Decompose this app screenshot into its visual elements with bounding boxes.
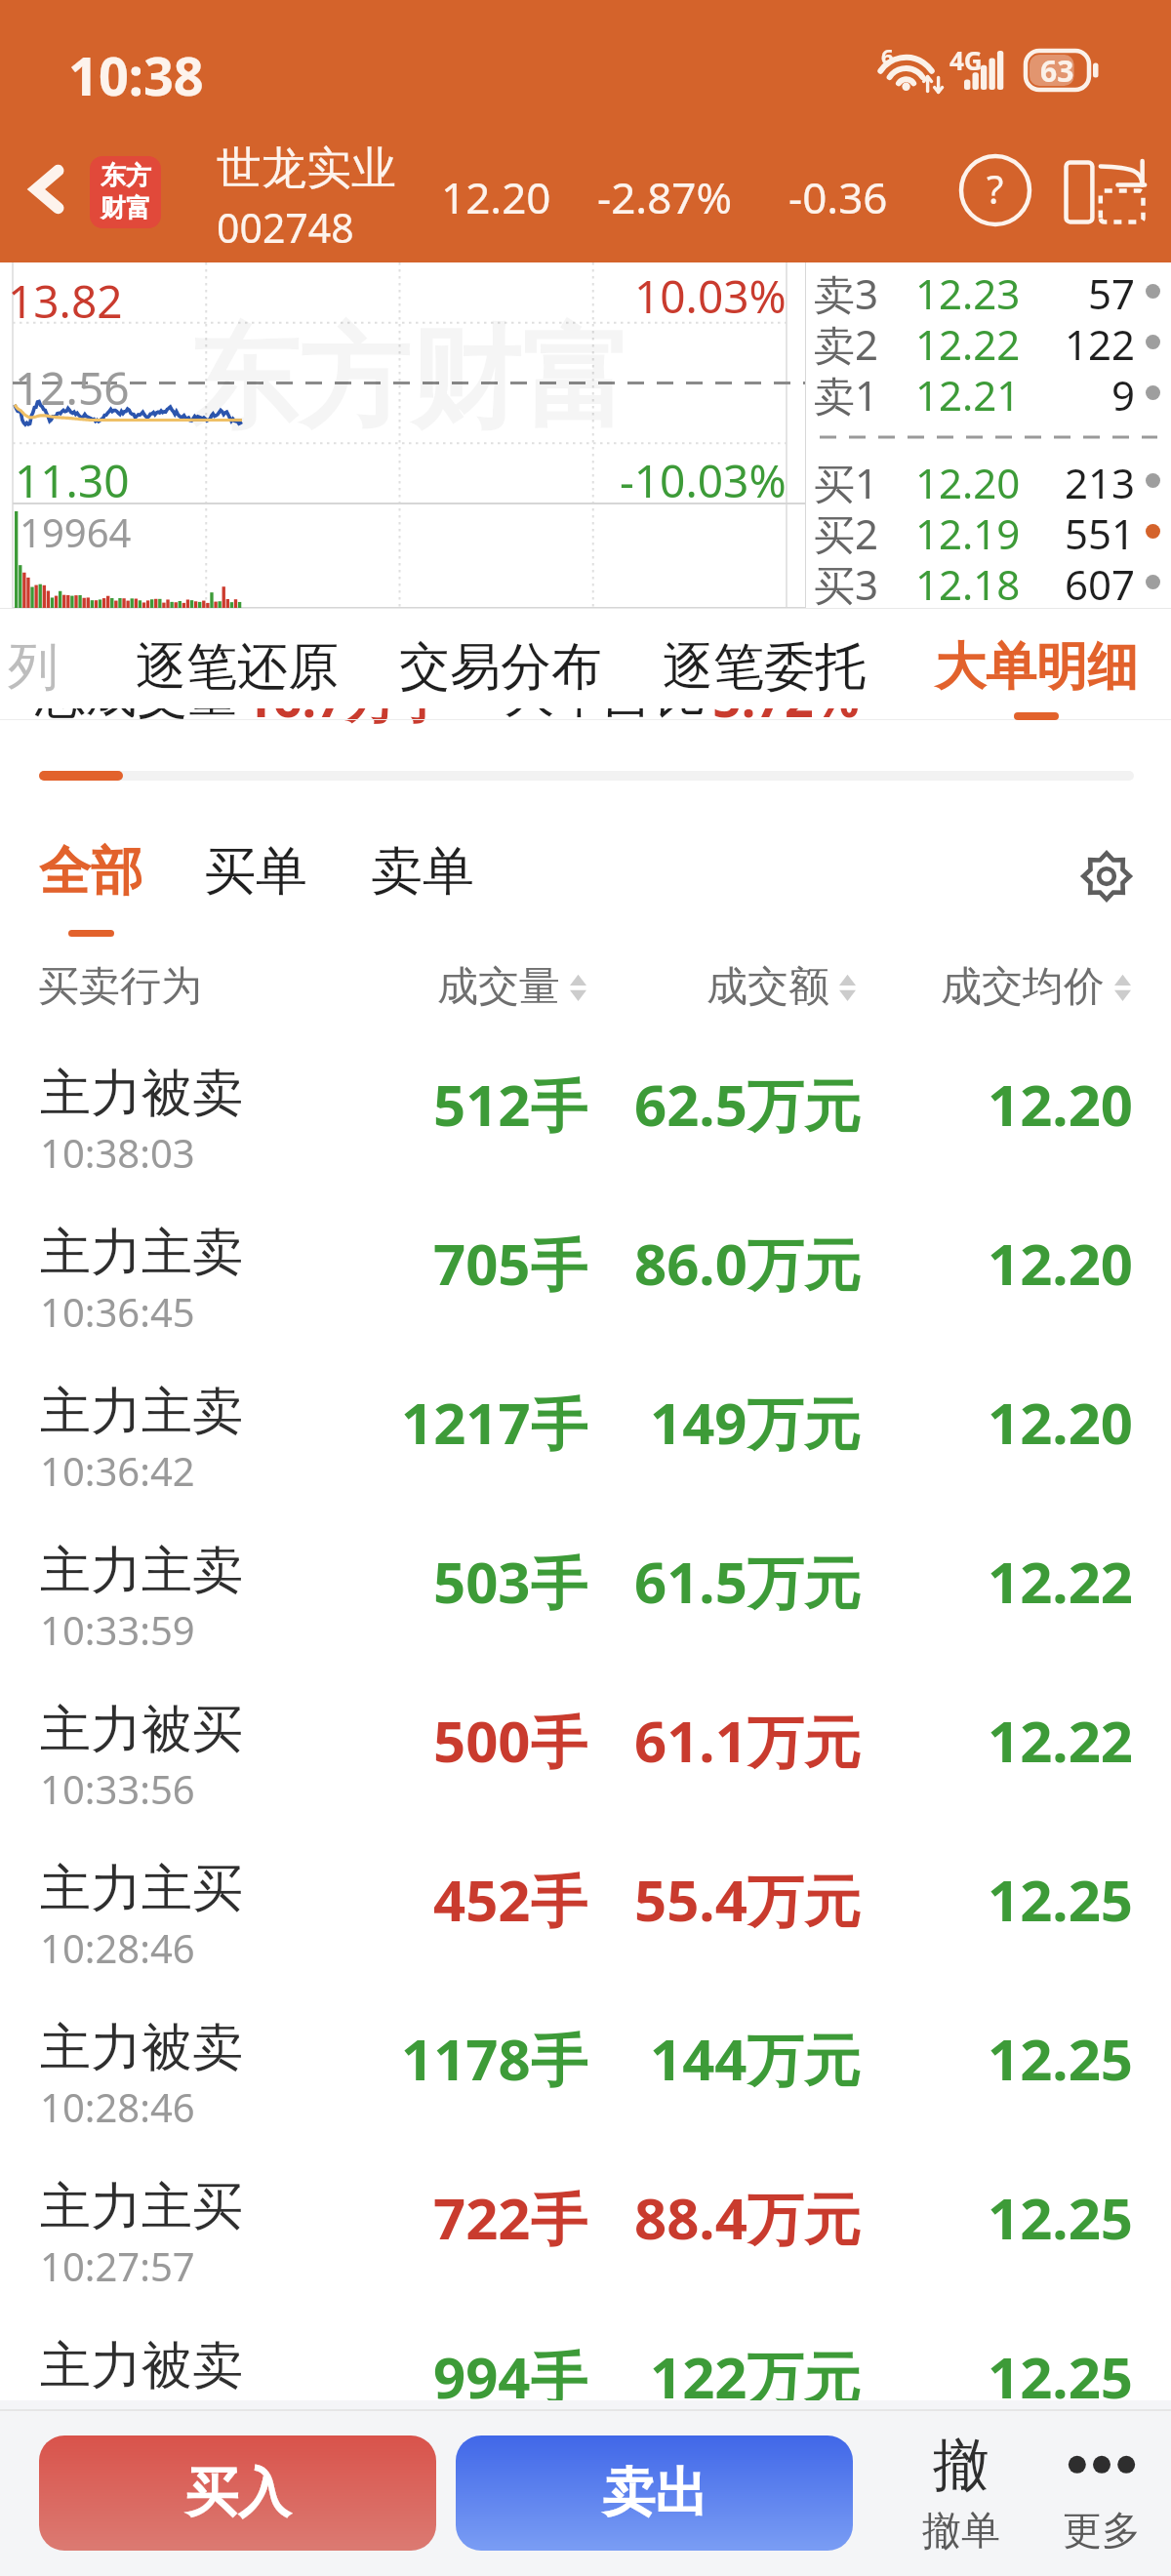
- staticText: 122: [1065, 316, 1136, 367]
- staticText: 12.23: [915, 265, 1021, 316]
- staticText: 12.20: [988, 1066, 1134, 1143]
- button[interactable]: 大单明细: [913, 635, 1159, 717]
- button[interactable]: 主力主买: [0, 2123, 1171, 2282]
- staticText: 大单占比: [504, 663, 707, 727]
- button[interactable]: 买入: [39, 2435, 436, 2551]
- staticText: 16.7万手: [244, 663, 447, 732]
- staticText: 主力被卖: [40, 2334, 243, 2398]
- staticText: 12.25: [988, 2338, 1134, 2409]
- staticText: 13.82: [8, 270, 123, 332]
- staticText: 607: [1065, 556, 1136, 607]
- button[interactable]: 买1: [806, 455, 1171, 505]
- staticText: 11.30: [15, 450, 130, 511]
- staticText: 144万元: [650, 2020, 861, 2097]
- staticText: 10:38: [68, 39, 204, 111]
- staticText: 买入: [185, 2460, 291, 2526]
- staticText: 主力主卖: [40, 1539, 243, 1603]
- staticText: 10:33:59: [40, 1603, 195, 1656]
- button[interactable]: 主力被卖: [0, 1964, 1171, 2123]
- button[interactable]: More: [1038, 2428, 1165, 2555]
- button[interactable]: 卖3: [806, 265, 1171, 316]
- staticText: 主力主买: [40, 1857, 243, 1921]
- button[interactable]: East Money logo: [90, 156, 161, 228]
- button[interactable]: 主力主买: [0, 1805, 1171, 1964]
- staticText: 东方: [101, 160, 151, 192]
- staticText: 10:28:46: [40, 1921, 195, 1974]
- staticText: 更多: [1063, 2506, 1141, 2555]
- button[interactable]: 主力主卖: [0, 1487, 1171, 1646]
- staticText: 002748: [217, 200, 354, 255]
- staticText: 10:36:45: [40, 1285, 195, 1338]
- button[interactable]: 主力被卖: [0, 1010, 1171, 1169]
- staticText: 买卖行为: [38, 961, 202, 1013]
- staticText: 10:27:50: [40, 2398, 195, 2409]
- button[interactable]: 卖单: [348, 839, 497, 917]
- staticText: 12.25: [988, 1861, 1134, 1938]
- button[interactable]: 主力被卖: [0, 2282, 1171, 2409]
- button[interactable]: Landscape mode: [1056, 143, 1153, 241]
- staticText: 722手: [433, 2179, 587, 2256]
- staticText: 1178手: [401, 2020, 587, 2097]
- button[interactable]: 买3: [806, 556, 1171, 607]
- staticText: 1217手: [401, 1384, 587, 1461]
- button[interactable]: 撤: [898, 2428, 1025, 2555]
- staticText: 主力被卖: [40, 2016, 243, 2080]
- staticText: 大单明细: [935, 635, 1138, 700]
- staticText: 10:28:46: [40, 2080, 195, 2133]
- button[interactable]: 主力被买: [0, 1646, 1171, 1805]
- staticText: 9: [1111, 367, 1136, 418]
- staticText: 逐笔委托: [663, 635, 866, 700]
- staticText: 10.03%: [634, 265, 787, 327]
- staticText: 卖2: [814, 316, 879, 367]
- staticText: 买单: [204, 839, 307, 905]
- button[interactable]: Help: [949, 143, 1042, 237]
- staticText: 6: [881, 41, 894, 70]
- staticText: 503手: [433, 1543, 587, 1620]
- staticText: 12.22: [988, 1702, 1134, 1779]
- button[interactable]: 卖1: [806, 367, 1171, 418]
- staticText: 213: [1065, 455, 1136, 505]
- staticText: 19964: [20, 505, 132, 558]
- staticText: 主力被买: [40, 1698, 243, 1762]
- button[interactable]: 买单: [182, 839, 330, 917]
- staticText: 12.19: [915, 505, 1021, 556]
- button[interactable]: 逐笔委托: [661, 635, 868, 700]
- staticText: 10:38:03: [40, 1126, 195, 1179]
- button[interactable]: 主力主卖: [0, 1328, 1171, 1487]
- staticText: 61.5万元: [634, 1543, 861, 1620]
- staticText: 62.5万元: [634, 1066, 861, 1143]
- button[interactable]: 卖出: [456, 2435, 853, 2551]
- staticText: 88.4万元: [634, 2179, 861, 2256]
- staticText: 122万元: [650, 2338, 861, 2409]
- staticText: 57: [1088, 265, 1136, 316]
- staticText: 买1: [814, 455, 879, 505]
- button[interactable]: 交易分布: [397, 635, 604, 700]
- button[interactable]: 列: [0, 635, 59, 700]
- button[interactable]: 买2: [806, 505, 1171, 556]
- staticText: 成交量: [437, 961, 560, 1013]
- staticText: -10.03%: [620, 450, 787, 511]
- staticText: 500手: [433, 1702, 587, 1779]
- button[interactable]: Settings: [1065, 834, 1149, 918]
- button[interactable]: 逐笔还原: [134, 635, 341, 700]
- staticText: 撤单: [922, 2506, 1000, 2555]
- staticText: 61.1万元: [634, 1702, 861, 1779]
- staticText: 卖单: [371, 839, 474, 905]
- button[interactable]: 全部: [16, 839, 166, 937]
- button[interactable]: 成交量: [437, 961, 586, 1013]
- staticText: 列: [8, 635, 59, 700]
- staticText: 主力主卖: [40, 1380, 243, 1444]
- button[interactable]: 主力主卖: [0, 1169, 1171, 1328]
- staticText: ?: [987, 162, 1004, 215]
- button[interactable]: 成交均价: [941, 961, 1131, 1013]
- staticText: 买3: [814, 556, 879, 607]
- button[interactable]: Back: [8, 144, 86, 234]
- staticText: 149万元: [650, 1384, 861, 1461]
- staticText: 12.21: [915, 367, 1021, 418]
- button[interactable]: 卖2: [806, 316, 1171, 367]
- staticText: 12.20: [988, 1384, 1134, 1461]
- staticText: 成交额: [707, 961, 829, 1013]
- staticText: 卖3: [814, 265, 879, 316]
- button[interactable]: 成交额: [707, 961, 856, 1013]
- staticText: 12.22: [988, 1543, 1134, 1620]
